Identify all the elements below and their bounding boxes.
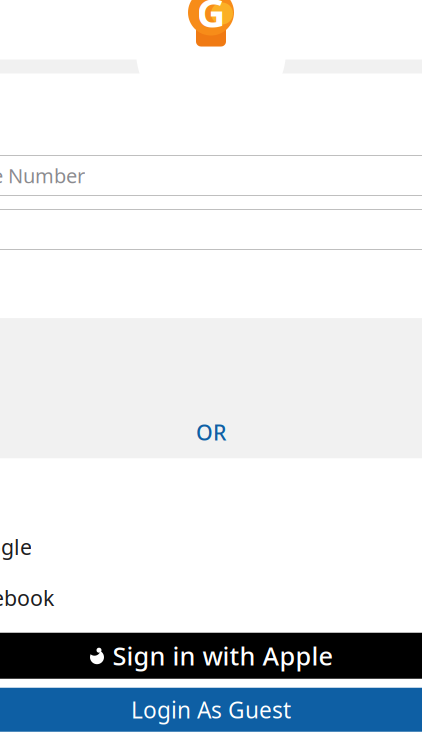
- button[interactable]: Login As Guest: [0, 688, 422, 732]
- button[interactable]: Connect via Facebook: [0, 581, 422, 615]
- staticText: G: [196, 0, 225, 38]
- staticText: Connect via Facebook: [0, 583, 54, 612]
- button[interactable]: Phone Number: [0, 155, 422, 195]
- staticText: Sign in with Apple: [112, 639, 333, 672]
- button[interactable]: Sign in with Apple: [0, 633, 422, 679]
- staticText: Login As Guest: [131, 695, 291, 725]
- staticText: Phone Number: [0, 162, 85, 189]
- staticText: OR: [196, 418, 226, 446]
- button[interactable]: Password: [0, 209, 422, 249]
- staticText: Connect via Google: [0, 532, 32, 561]
- button[interactable]: Connect via Google: [0, 530, 422, 564]
